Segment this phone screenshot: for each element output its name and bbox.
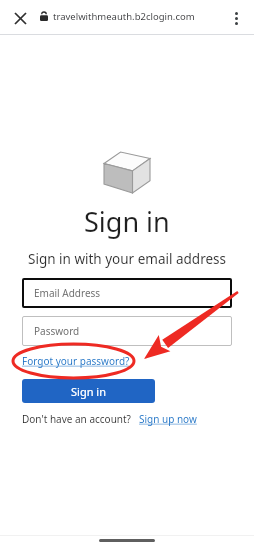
staticText: Sign in xyxy=(71,384,106,399)
staticText: Sign up now xyxy=(139,412,197,426)
button[interactable]: Email Address xyxy=(22,278,232,308)
button[interactable]: Sign in xyxy=(22,379,155,403)
staticText: Sign in xyxy=(84,203,170,240)
staticText: travelwithmeauth.b2clogin.com xyxy=(53,10,195,23)
staticText: Forgot your password? xyxy=(22,354,130,368)
staticText: Sign in with your email address xyxy=(28,250,227,268)
staticText: Password xyxy=(34,324,80,338)
button[interactable]: Sign up now xyxy=(139,412,197,426)
button[interactable]: More options xyxy=(222,4,250,32)
button[interactable]: Forgot your password? xyxy=(22,354,130,368)
button[interactable]: Close xyxy=(6,4,34,32)
staticText: Email Address xyxy=(34,286,101,300)
staticText: Don't have an account? xyxy=(22,412,131,426)
button[interactable]: Password xyxy=(22,316,232,346)
